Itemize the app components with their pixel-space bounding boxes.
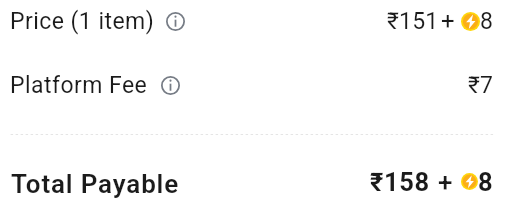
staticText: + (438, 167, 453, 197)
button[interactable]: Price (1 item) (0, 0, 511, 42)
staticText: Total Payable (11, 169, 180, 199)
staticText: + (441, 7, 455, 35)
staticText: 8 (478, 167, 494, 197)
staticText: ₹151 (387, 8, 439, 35)
staticText: 8 (480, 8, 494, 35)
staticText: Price (1 item) (10, 8, 155, 35)
button[interactable]: About price (166, 12, 185, 31)
staticText: Platform Fee (10, 72, 148, 99)
button[interactable]: About platform fee (161, 76, 180, 95)
button[interactable]: Platform Fee (0, 64, 511, 106)
staticText: ₹7 (468, 72, 494, 99)
staticText: ₹158 (370, 167, 430, 197)
button[interactable]: Total Payable (0, 162, 511, 206)
